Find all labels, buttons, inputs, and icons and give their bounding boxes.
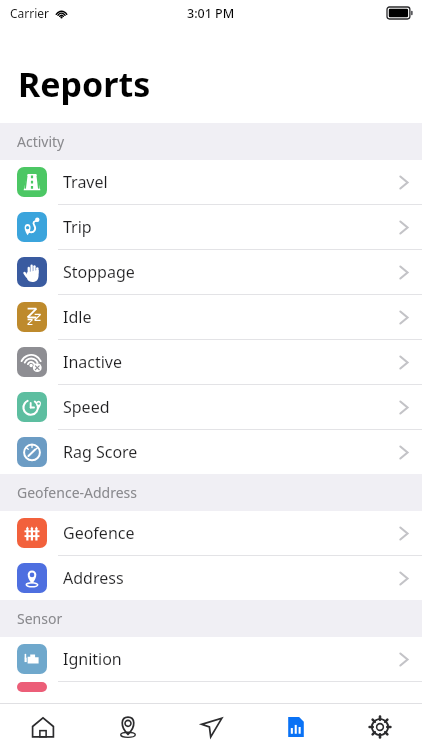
button[interactable]: Places [85,704,170,750]
staticText: 3:01 PM [187,5,235,22]
button[interactable]: Geofence [0,511,422,555]
button[interactable]: Settings [338,704,422,750]
staticText: Carrier [10,5,50,21]
button[interactable]: Ignition [0,637,422,681]
button[interactable]: Reports [254,704,338,750]
staticText: Rag Score [63,441,138,463]
button[interactable]: Navigate [170,704,254,750]
button[interactable]: Stoppage [0,250,422,294]
button[interactable]: Rag Score [0,430,422,474]
button[interactable]: Inactive [0,340,422,384]
staticText: Inactive [63,351,123,373]
staticText: Ignition [63,648,122,670]
staticText: Speed [63,396,110,418]
staticText: Address [63,567,124,589]
staticText: Geofence [63,522,135,544]
button[interactable]: Travel [0,160,422,204]
staticText: Trip [63,216,92,238]
staticText: Activity [17,132,65,151]
staticText: Idle [63,306,92,328]
button[interactable]: Speed [0,385,422,429]
staticText: Geofence-Address [17,483,138,502]
staticText: Travel [63,171,108,193]
button[interactable]: Home [0,704,85,750]
staticText: Reports [18,61,151,107]
button[interactable]: Idle [0,295,422,339]
button[interactable]: Trip [0,205,422,249]
staticText: Stoppage [63,261,135,283]
staticText: Sensor [17,609,63,628]
button[interactable]: Address [0,556,422,600]
